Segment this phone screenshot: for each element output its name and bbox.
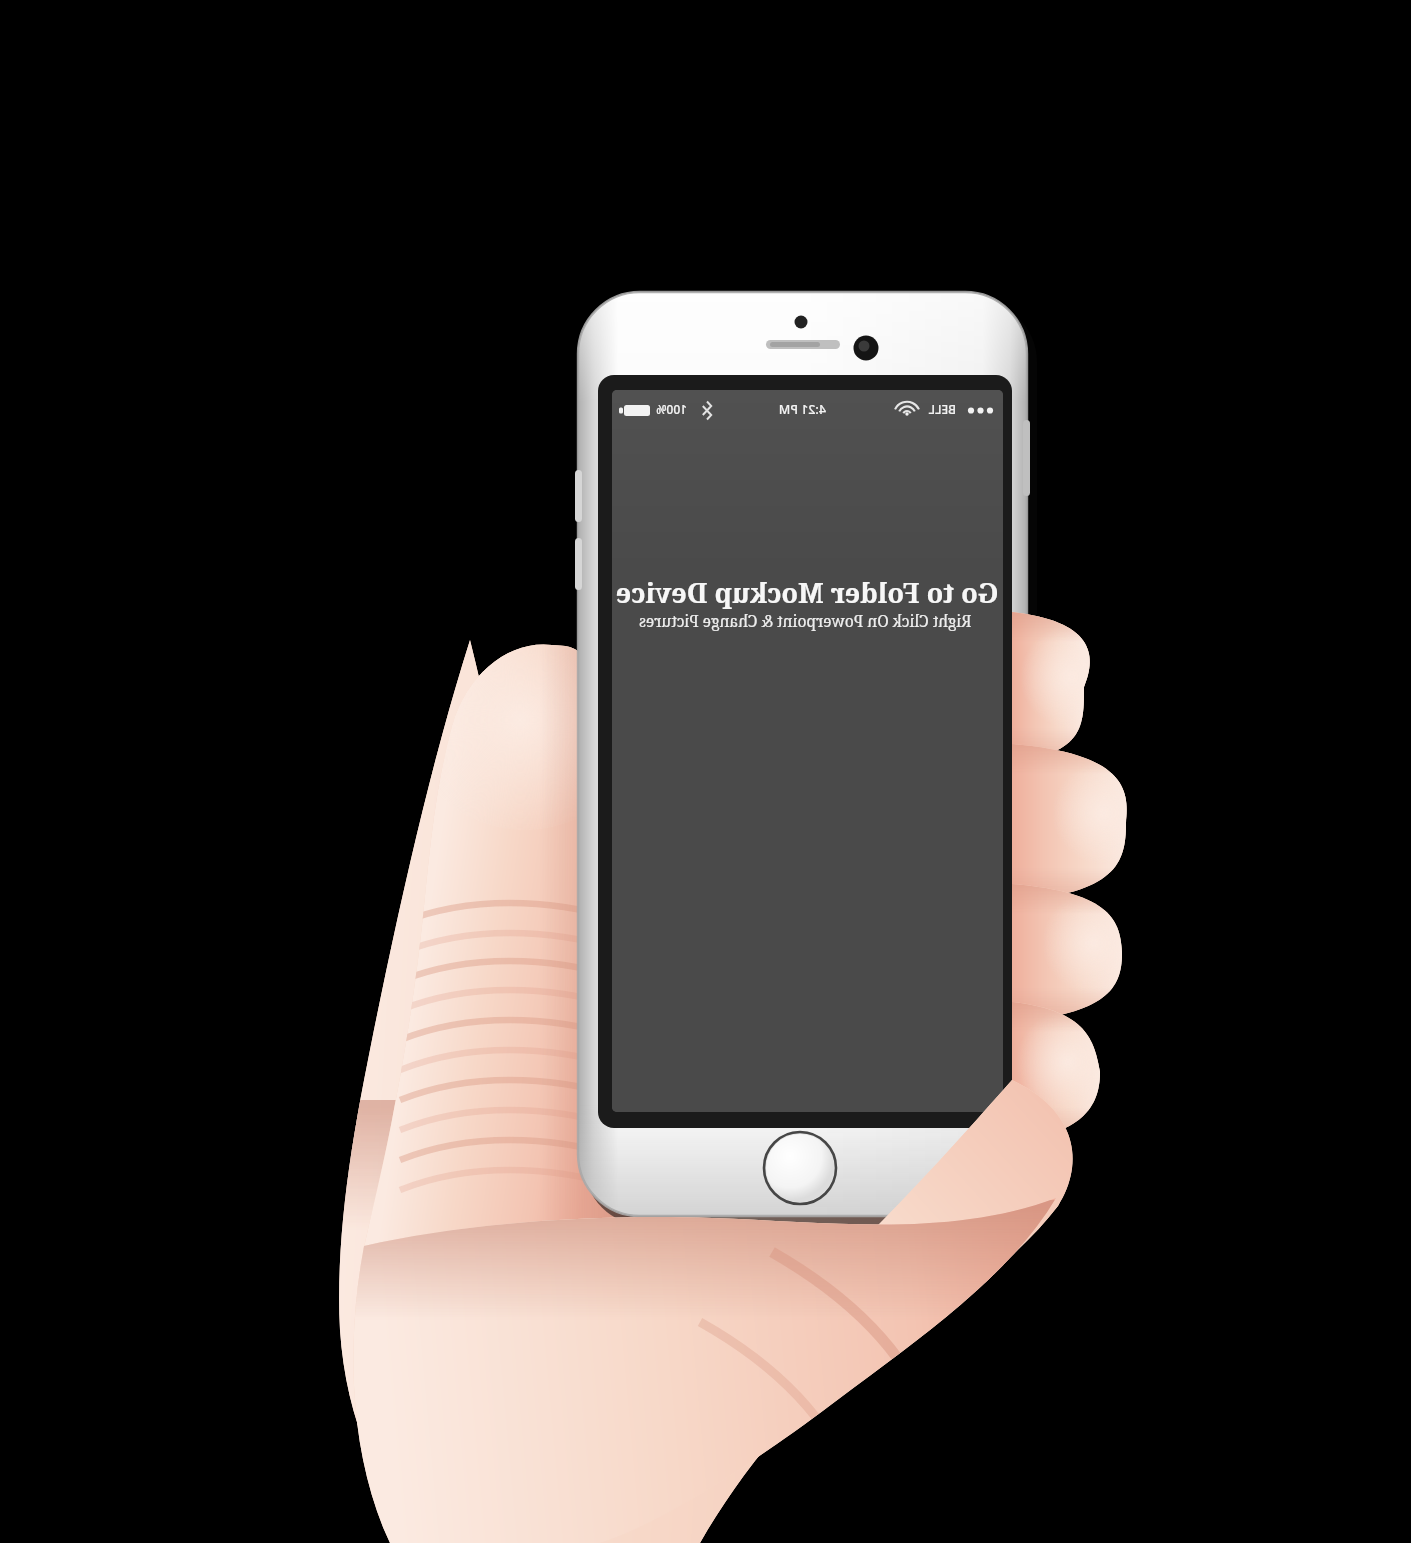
button[interactable]: Hand holding phone mockup (0, 0, 1411, 1543)
